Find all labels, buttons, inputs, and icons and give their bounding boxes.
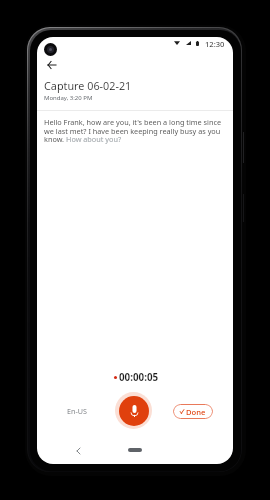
button[interactable]: Record [115,392,152,429]
staticText: Hello Frank, how are you, it's been a lo… [44,117,231,144]
staticText: Capture 06-02-21 [44,78,132,93]
staticText: Done [186,407,206,417]
button[interactable]: Home [124,443,146,456]
staticText: 00:00:05 [119,371,159,384]
staticText: Monday, 3:20 PM [44,94,93,102]
staticText: En-US [67,406,87,416]
button[interactable]: Navigate back [69,442,87,460]
button[interactable]: Done [173,404,213,419]
button[interactable]: Back [40,54,62,76]
button[interactable]: En-US [59,401,95,421]
staticText: 12:30 [205,39,225,49]
